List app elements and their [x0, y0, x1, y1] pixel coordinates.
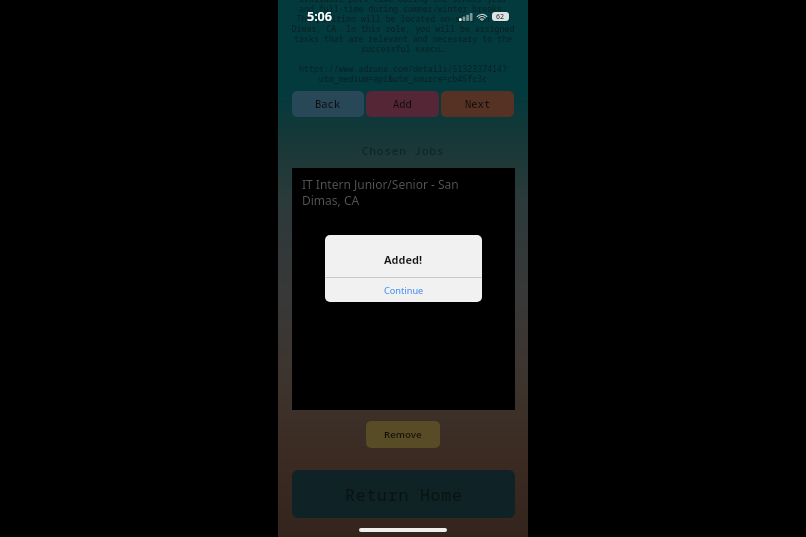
staticText: 5:06 [307, 8, 332, 25]
staticText: Return Home [345, 483, 463, 505]
other: Cellular signal [459, 13, 473, 21]
staticText: Next [465, 97, 491, 111]
button[interactable]: Remove [366, 421, 440, 448]
button[interactable]: IT Intern Junior/Senior - San Dimas, CA [292, 168, 515, 410]
staticText: Chosen Jobs [278, 143, 528, 159]
button[interactable]: Return Home [292, 470, 515, 518]
staticText: 62 [496, 12, 505, 21]
staticText: Add [393, 97, 412, 111]
staticText: Continue [384, 284, 424, 297]
button[interactable]: Continue [325, 278, 482, 302]
button[interactable]: Add [366, 91, 439, 117]
staticText: IT Intern Junior/Senior - San Dimas, CA [302, 176, 481, 208]
button[interactable]: Next [441, 91, 514, 117]
other: Wi-Fi [477, 13, 487, 21]
button[interactable]: Back [292, 91, 364, 117]
staticText: available part-time during the school ye… [278, 0, 528, 84]
other: Battery 62 percent [492, 12, 509, 21]
staticText: Added! [384, 252, 423, 267]
staticText: Remove [384, 428, 422, 441]
staticText: Back [315, 97, 341, 111]
